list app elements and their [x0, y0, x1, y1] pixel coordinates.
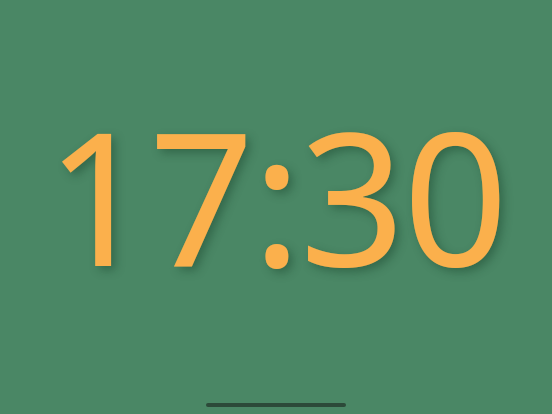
staticText: 17:30 [0, 69, 552, 320]
other: Home gesture bar [206, 403, 346, 407]
button[interactable]: Clock showing 17:30 [0, 0, 552, 414]
